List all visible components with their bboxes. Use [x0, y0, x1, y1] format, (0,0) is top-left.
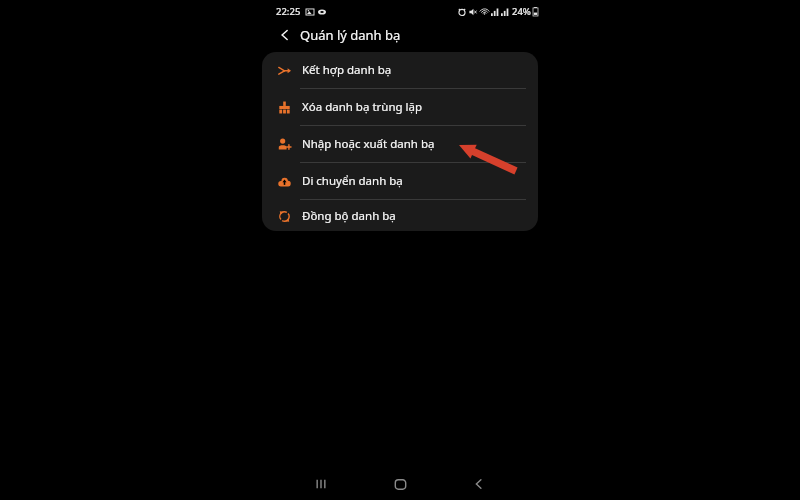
- button[interactable]: Home: [379, 470, 421, 498]
- staticText: Kết hợp danh bạ: [302, 62, 392, 78]
- button[interactable]: Kết hợp danh bạ: [262, 52, 538, 88]
- button[interactable]: Di chuyển danh bạ: [262, 163, 538, 199]
- staticText: Quán lý danh bạ: [300, 26, 401, 44]
- button[interactable]: Xóa danh bạ trùng lặp: [262, 89, 538, 125]
- button[interactable]: Nhập hoặc xuất danh bạ: [262, 126, 538, 162]
- staticText: Đồng bộ danh bạ: [302, 208, 396, 224]
- button[interactable]: Back: [458, 470, 500, 498]
- staticText: Xóa danh bạ trùng lặp: [302, 99, 423, 115]
- staticText: Nhập hoặc xuất danh bạ: [302, 136, 435, 152]
- staticText: Di chuyển danh bạ: [302, 173, 403, 189]
- button[interactable]: Recents: [300, 470, 342, 498]
- staticText: 22:25: [276, 5, 301, 18]
- button[interactable]: Đồng bộ danh bạ: [262, 200, 538, 231]
- staticText: 24%: [512, 5, 531, 18]
- button[interactable]: Back: [274, 24, 296, 46]
